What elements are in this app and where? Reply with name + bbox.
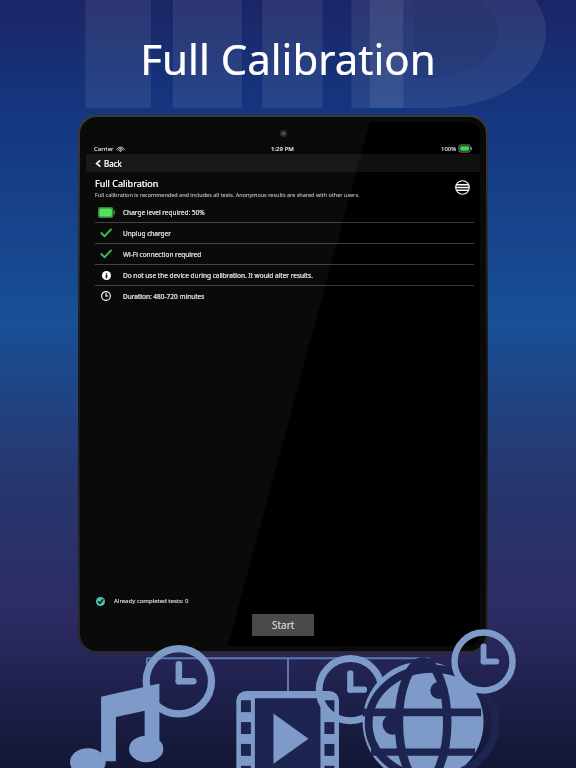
- staticText: 100%: [441, 145, 457, 153]
- button[interactable]: Menu: [453, 178, 472, 197]
- staticText: 1:29 PM: [271, 145, 294, 153]
- staticText: Carrier: [94, 145, 114, 153]
- button[interactable]: Back: [93, 156, 124, 171]
- staticText: Charge level required: 50%: [123, 208, 205, 217]
- button[interactable]: Video timer: [192, 653, 384, 768]
- staticText: Already completed tests: 0: [114, 597, 189, 605]
- staticText: Back: [104, 158, 122, 169]
- button[interactable]: Duration: 480-720 minutes: [86, 286, 480, 306]
- button[interactable]: Music timer: [0, 653, 192, 768]
- staticText: Wi-Fi connection required: [123, 250, 202, 259]
- button[interactable]: Start: [252, 614, 314, 636]
- button[interactable]: Charge level required: 50%: [86, 202, 480, 223]
- staticText: Full calibration is recommended and incl…: [95, 191, 360, 198]
- staticText: Full Calibration: [95, 177, 159, 189]
- button[interactable]: Wi-Fi connection required: [86, 244, 480, 265]
- button[interactable]: Do not use the device during calibration…: [86, 265, 480, 286]
- button[interactable]: Already completed tests: 0: [96, 594, 480, 608]
- button[interactable]: Unplug charger: [86, 223, 480, 244]
- staticText: Do not use the device during calibration…: [123, 271, 313, 280]
- staticText: Full Calibration: [140, 30, 436, 87]
- button[interactable]: Web timer: [384, 653, 576, 768]
- staticText: Unplug charger: [123, 229, 171, 238]
- staticText: Duration: 480-720 minutes: [123, 292, 205, 301]
- staticText: Start: [272, 618, 295, 632]
